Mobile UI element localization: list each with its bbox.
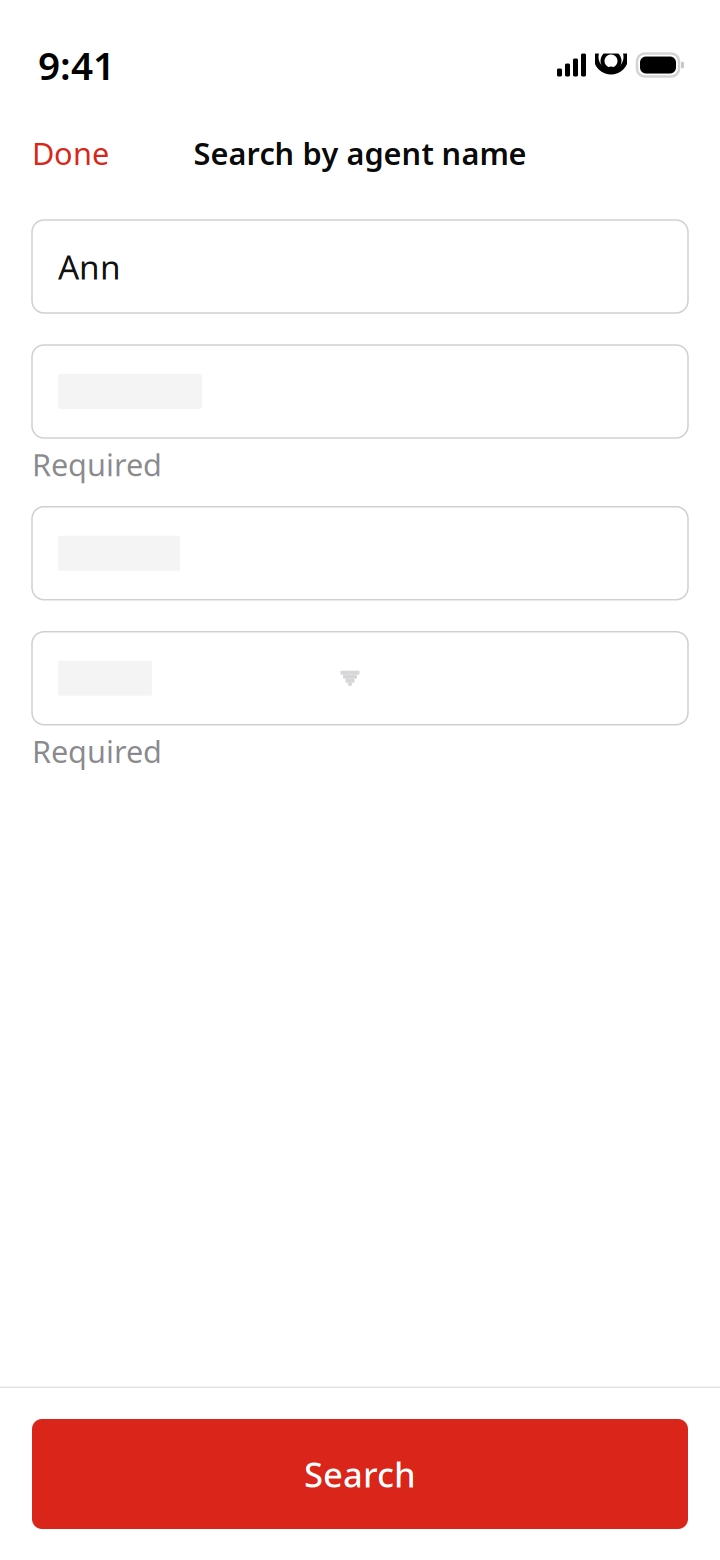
button[interactable]: Search	[32, 1419, 688, 1529]
button[interactable]: Ann	[32, 220, 688, 313]
button[interactable]	[32, 507, 688, 600]
button[interactable]	[32, 345, 688, 438]
staticText: Ann	[58, 244, 121, 289]
staticText: 9:41	[38, 39, 115, 91]
staticText: Search by agent name	[193, 133, 526, 173]
staticText: Search	[304, 1451, 416, 1497]
staticText: Required	[32, 444, 162, 485]
button[interactable]	[32, 632, 688, 725]
button[interactable]: Done	[20, 123, 121, 183]
staticText: Done	[32, 133, 109, 173]
staticText: Required	[32, 731, 162, 771]
